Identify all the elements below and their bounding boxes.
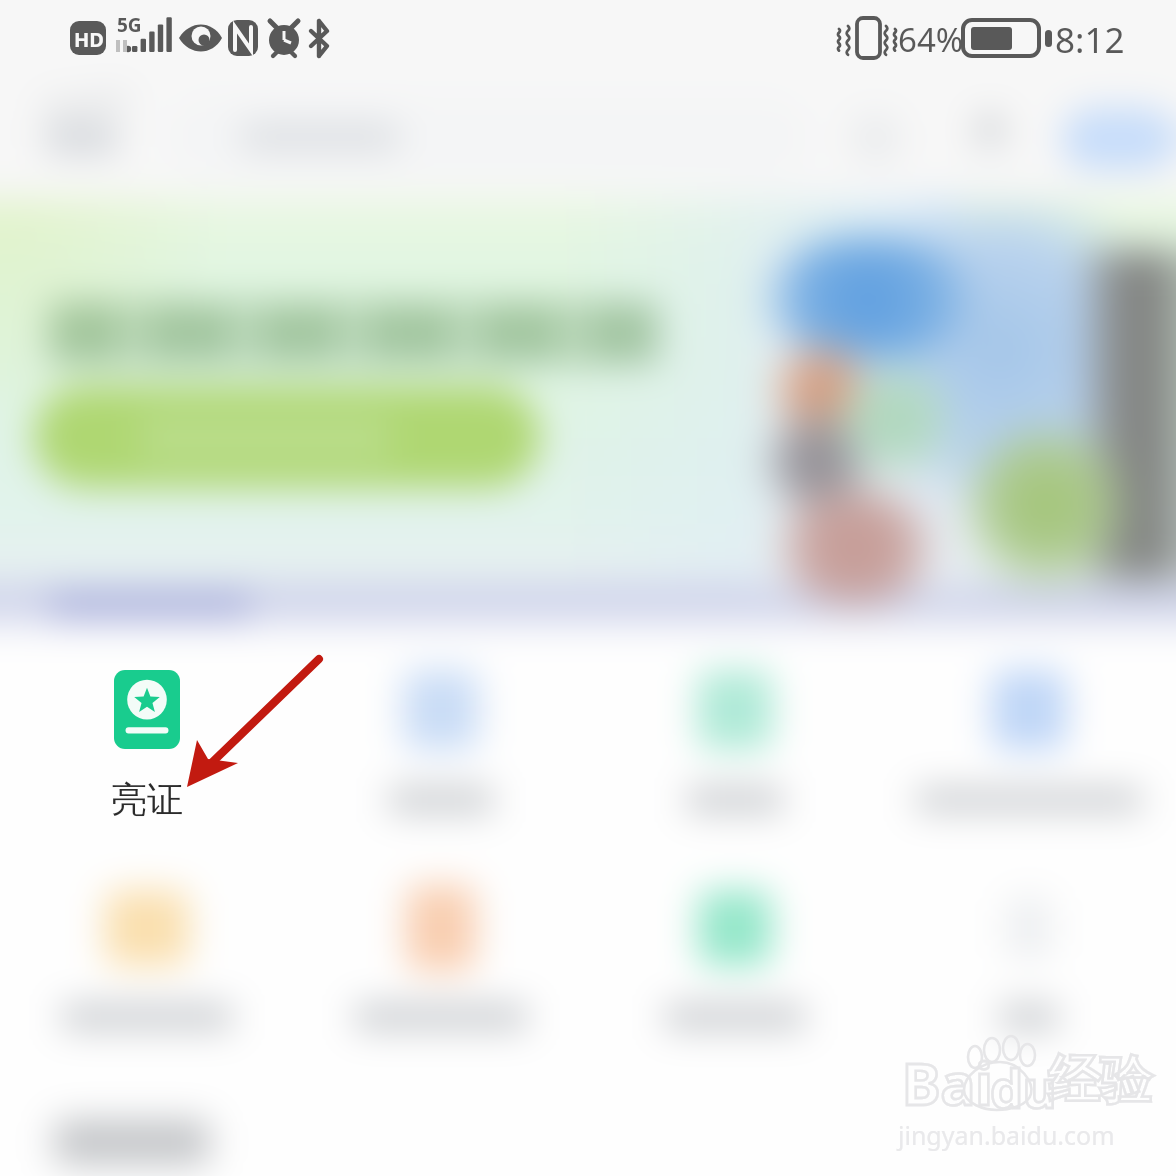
staticText: du bbox=[990, 1052, 1057, 1123]
button[interactable]: Notifications bbox=[958, 108, 1022, 172]
button[interactable]: Banner action bbox=[34, 386, 540, 488]
button[interactable]: Shortcut 8 bbox=[941, 866, 1117, 1050]
button[interactable]: Shortcut 3 bbox=[647, 648, 823, 832]
button[interactable]: Back bbox=[24, 84, 144, 174]
staticText: 经验 bbox=[1048, 1048, 1152, 1114]
staticText: Bai bbox=[902, 1043, 993, 1122]
staticText: 5G bbox=[117, 12, 142, 38]
button[interactable]: Shortcut 6 bbox=[353, 866, 529, 1050]
button[interactable]: Shortcut 5 bbox=[59, 866, 235, 1050]
staticText: HD bbox=[74, 26, 104, 53]
button[interactable]: Shortcut 2 bbox=[353, 648, 529, 832]
staticText: jingyan.baidu.com bbox=[898, 1118, 1115, 1152]
staticText: 亮证 bbox=[111, 777, 183, 822]
button[interactable]: Search bbox=[168, 98, 808, 176]
staticText: 64% bbox=[898, 17, 964, 62]
staticText: 8:12 bbox=[1055, 16, 1125, 64]
button[interactable]: Shortcut 4 bbox=[941, 648, 1117, 832]
button[interactable]: 亮证 bbox=[59, 648, 235, 832]
button[interactable]: Sign in bbox=[1062, 108, 1176, 170]
button[interactable]: Shortcut 7 bbox=[647, 866, 823, 1050]
